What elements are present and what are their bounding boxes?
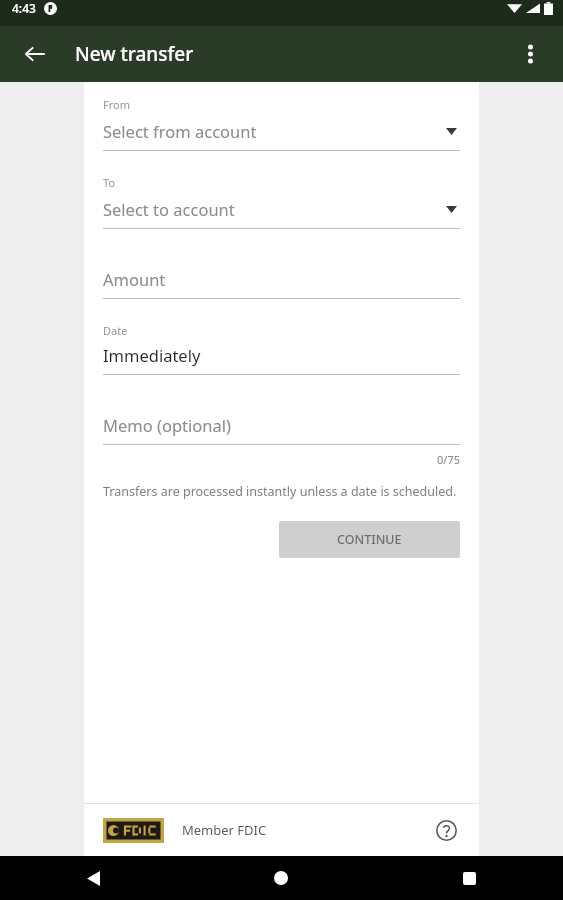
button[interactable]: CONTINUE <box>279 521 460 558</box>
button[interactable]: Select to account <box>103 198 460 229</box>
staticText: 0/75 <box>437 452 460 467</box>
button[interactable]: Help <box>427 811 465 849</box>
staticText: New transfer <box>75 41 194 67</box>
button[interactable]: Memo (optional) <box>103 414 460 445</box>
staticText: Memo (optional) <box>103 414 231 436</box>
staticText: From <box>103 97 130 112</box>
button[interactable]: More options <box>507 31 553 77</box>
staticText: Select to account <box>103 198 235 220</box>
staticText: Date <box>103 323 128 338</box>
button[interactable]: Recent apps <box>375 856 563 900</box>
button[interactable]: Back <box>12 31 58 77</box>
staticText: To <box>103 175 116 190</box>
button[interactable]: Select from account <box>103 120 460 151</box>
button[interactable]: Immediately <box>103 344 460 375</box>
staticText: Select from account <box>103 120 257 142</box>
button[interactable]: Amount <box>103 268 460 299</box>
staticText: Transfers are processed instantly unless… <box>103 483 457 500</box>
button[interactable]: Home <box>187 856 375 900</box>
staticText: CONTINUE <box>337 531 402 548</box>
staticText: Amount <box>103 268 166 290</box>
staticText: Immediately <box>103 344 201 366</box>
staticText: Member FDIC <box>182 821 267 839</box>
button[interactable]: Back <box>0 856 187 900</box>
staticText: 4:43 <box>12 0 36 16</box>
